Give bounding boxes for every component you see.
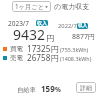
staticText: 26758円 bbox=[27, 52, 59, 63]
staticText: 売電 bbox=[10, 54, 23, 62]
staticText: の電力収支 bbox=[54, 2, 90, 11]
staticText: 159 bbox=[41, 83, 55, 94]
staticText: 円 bbox=[46, 33, 54, 43]
staticText: 収入 bbox=[37, 20, 47, 26]
staticText: 詳細 bbox=[80, 84, 92, 92]
button[interactable]: 1ヶ月ごと bbox=[12, 1, 51, 12]
staticText: 買電 bbox=[10, 45, 23, 53]
staticText: 2022/7 bbox=[58, 22, 77, 30]
staticText: (1408.3kWh) bbox=[60, 55, 92, 62]
staticText: 2023/7 bbox=[8, 19, 30, 28]
staticText: 8877円 bbox=[72, 32, 96, 42]
staticText: 1ヶ月ごと bbox=[15, 2, 45, 11]
staticText: 自給率 bbox=[17, 86, 36, 94]
staticText: 9432 bbox=[13, 25, 46, 44]
staticText: % bbox=[55, 85, 61, 94]
staticText: 17325円 bbox=[27, 43, 59, 54]
button[interactable]: 詳細 bbox=[76, 82, 96, 93]
staticText: 収入 bbox=[78, 23, 88, 29]
staticText: (755.3kWh) bbox=[60, 46, 89, 53]
